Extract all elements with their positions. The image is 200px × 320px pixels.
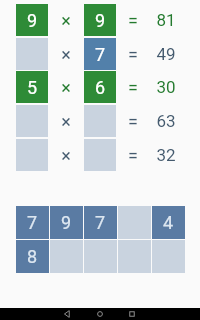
staticText: 9 <box>27 10 38 31</box>
button[interactable]: 5 <box>16 71 48 103</box>
staticText: 9 <box>61 212 72 233</box>
button[interactable]: 9 <box>84 4 116 36</box>
button[interactable]: Recents <box>120 308 144 320</box>
staticText: 49 <box>156 44 176 64</box>
staticText: 81 <box>156 10 176 30</box>
staticText: 9 <box>95 10 106 31</box>
staticText: = <box>128 77 138 98</box>
staticText: × <box>61 44 71 65</box>
staticText: 5 <box>27 77 38 98</box>
button[interactable]: Back <box>55 308 79 320</box>
staticText: 8 <box>27 246 38 267</box>
button[interactable]: 8 <box>16 240 49 273</box>
button[interactable]: 7 <box>16 206 49 239</box>
staticText: 7 <box>95 212 106 233</box>
staticText: 4 <box>163 212 174 233</box>
staticText: 30 <box>156 77 176 97</box>
staticText: = <box>128 111 138 132</box>
staticText: 6 <box>95 77 106 98</box>
staticText: = <box>128 44 138 65</box>
button[interactable]: 4 <box>152 206 185 239</box>
staticText: × <box>61 111 71 132</box>
button[interactable]: 9 <box>16 4 48 36</box>
button[interactable]: Home <box>88 308 112 320</box>
button[interactable]: 7 <box>84 38 116 70</box>
staticText: × <box>61 77 71 98</box>
button[interactable]: 7 <box>84 206 117 239</box>
staticText: 32 <box>156 145 176 165</box>
button[interactable]: 6 <box>84 71 116 103</box>
staticText: 7 <box>27 212 38 233</box>
staticText: 7 <box>95 44 106 65</box>
staticText: 63 <box>156 111 176 131</box>
staticText: × <box>61 10 71 31</box>
staticText: = <box>128 10 138 31</box>
button[interactable]: 9 <box>50 206 83 239</box>
staticText: × <box>61 145 71 166</box>
staticText: = <box>128 145 138 166</box>
